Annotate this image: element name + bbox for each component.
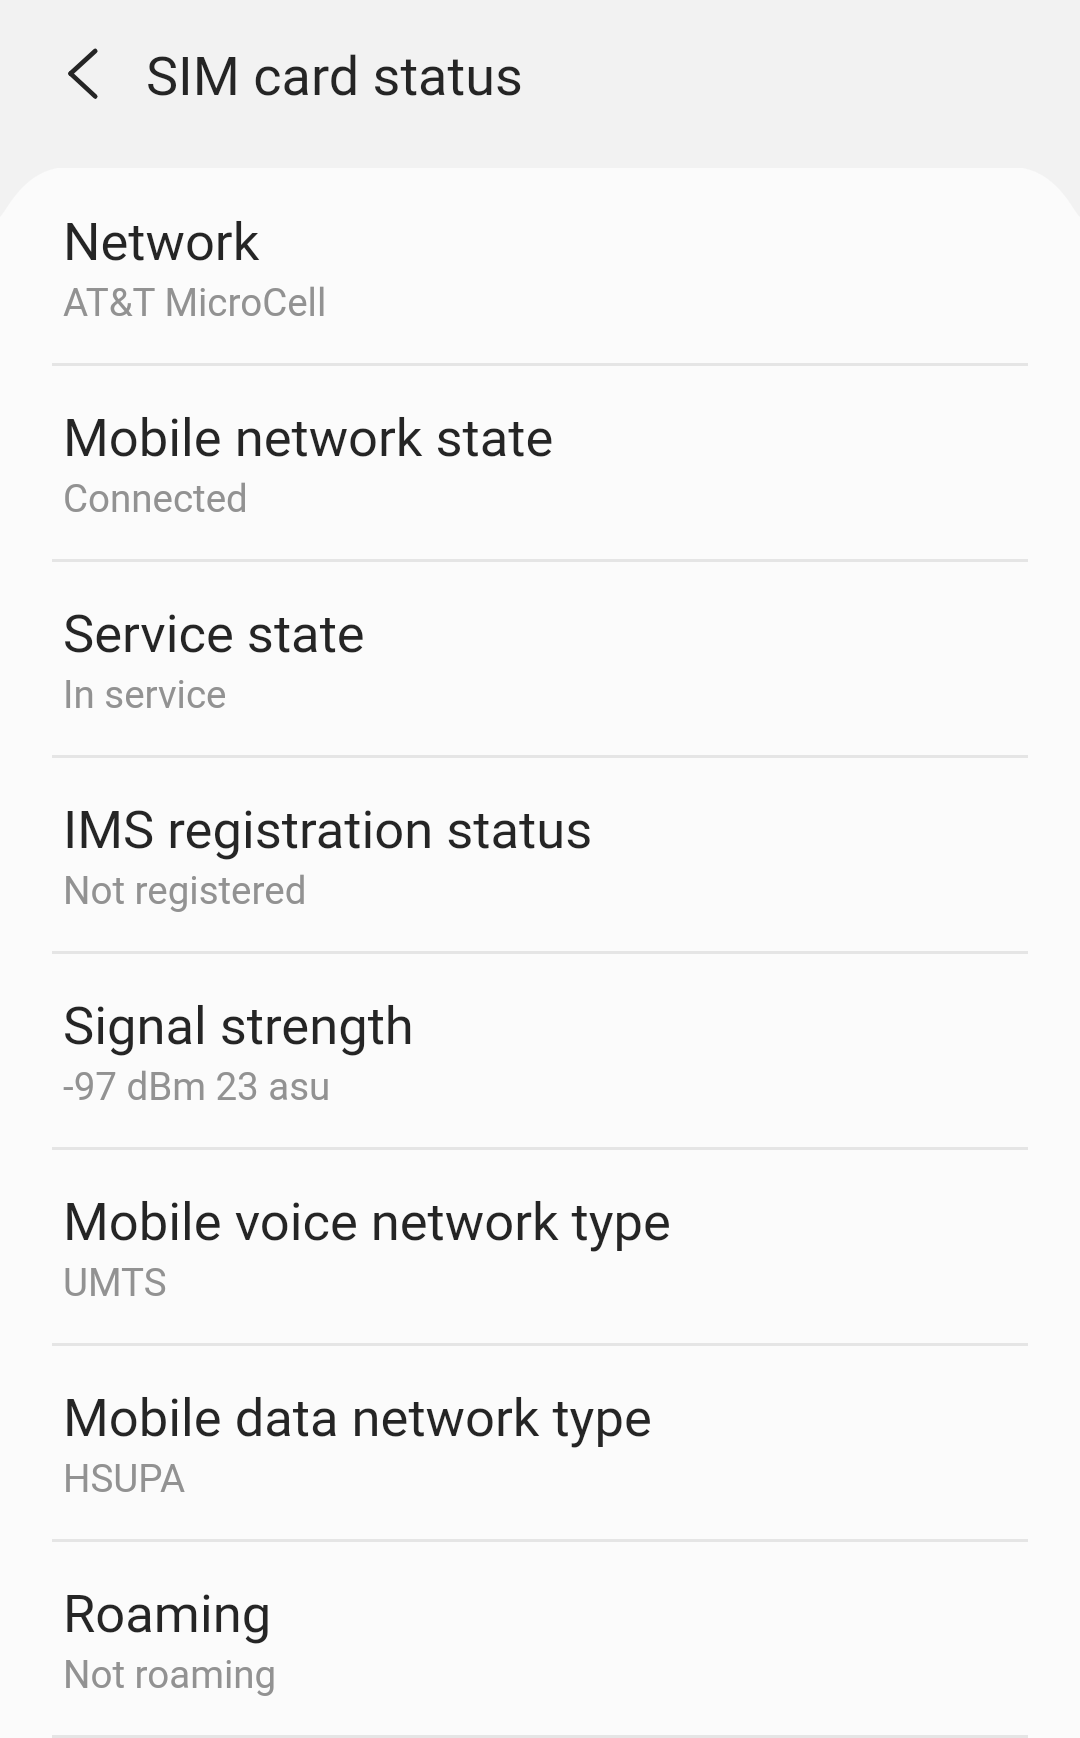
button[interactable]: Service state bbox=[0, 560, 1080, 756]
staticText: Mobile voice network type bbox=[63, 1188, 671, 1254]
staticText: Signal strength bbox=[63, 992, 414, 1058]
staticText: Roaming bbox=[63, 1580, 272, 1646]
staticText: Mobile network state bbox=[63, 404, 554, 470]
button[interactable]: IMS registration status bbox=[0, 756, 1080, 952]
button[interactable]: Mobile network type bbox=[0, 1736, 1080, 1738]
staticText: Network bbox=[63, 208, 260, 274]
staticText: HSUPA bbox=[63, 1454, 186, 1502]
staticText: Mobile data network type bbox=[63, 1384, 652, 1450]
button[interactable]: Mobile data network type bbox=[0, 1344, 1080, 1540]
staticText: UMTS bbox=[63, 1258, 167, 1306]
staticText: -97 dBm 23 asu bbox=[63, 1062, 331, 1110]
staticText: AT&T MicroCell bbox=[63, 278, 327, 326]
staticText: In service bbox=[63, 670, 227, 718]
button[interactable]: Back bbox=[47, 49, 119, 121]
button[interactable]: Mobile voice network type bbox=[0, 1148, 1080, 1344]
staticText: SIM card status bbox=[146, 41, 523, 109]
staticText: Not registered bbox=[63, 866, 307, 914]
staticText: Service state bbox=[63, 600, 365, 666]
button[interactable]: Signal strength bbox=[0, 952, 1080, 1148]
button[interactable]: Mobile network state bbox=[0, 364, 1080, 560]
button[interactable]: Network bbox=[0, 168, 1080, 364]
staticText: Connected bbox=[63, 474, 248, 522]
staticText: Not roaming bbox=[63, 1650, 277, 1698]
staticText: IMS registration status bbox=[63, 796, 593, 862]
button[interactable]: Roaming bbox=[0, 1540, 1080, 1736]
